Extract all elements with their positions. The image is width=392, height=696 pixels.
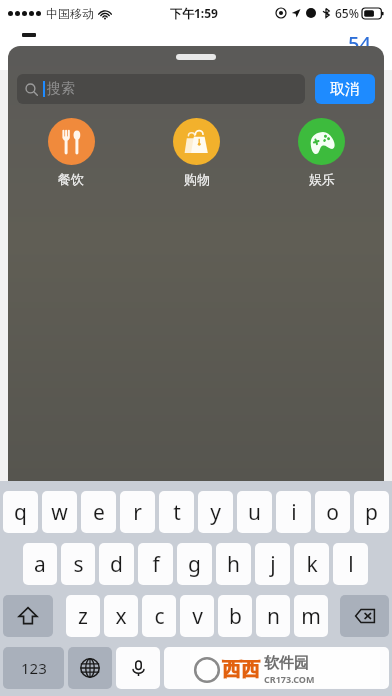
staticText: 中国移动 xyxy=(46,6,94,21)
button[interactable]: h xyxy=(216,543,251,585)
staticText: 西西 xyxy=(222,658,260,682)
staticText: x xyxy=(115,602,127,631)
button[interactable]: s xyxy=(61,543,95,585)
staticText: CR173.COM xyxy=(264,673,315,685)
staticText: j xyxy=(270,550,276,579)
button[interactable]: Dictate xyxy=(116,647,160,689)
button[interactable]: Space xyxy=(164,647,389,689)
button[interactable]: j xyxy=(255,543,290,585)
staticText: 65% xyxy=(335,5,359,21)
staticText: z xyxy=(78,602,88,631)
staticText: 54 xyxy=(348,30,371,57)
button[interactable]: u xyxy=(237,491,272,533)
button[interactable]: c xyxy=(142,595,176,637)
button[interactable]: t xyxy=(159,491,194,533)
button[interactable]: 搜索 xyxy=(17,74,305,104)
button[interactable]: i xyxy=(276,491,311,533)
button[interactable]: d xyxy=(99,543,134,585)
button[interactable]: Backspace xyxy=(340,595,389,637)
staticText: b xyxy=(229,602,242,631)
staticText: g xyxy=(188,550,201,579)
staticText: p xyxy=(365,498,378,527)
staticText: r xyxy=(133,498,142,527)
staticText: d xyxy=(110,550,123,579)
staticText: l xyxy=(348,550,354,579)
staticText: 娱乐 xyxy=(309,171,335,187)
button[interactable]: e xyxy=(81,491,116,533)
staticText: 餐饮 xyxy=(58,171,84,187)
staticText: q xyxy=(14,498,27,527)
button[interactable]: z xyxy=(66,595,100,637)
staticText: k xyxy=(306,550,318,579)
button[interactable]: o xyxy=(315,491,350,533)
staticText: v xyxy=(192,602,203,631)
staticText: h xyxy=(227,550,240,579)
staticText: s xyxy=(73,550,84,579)
staticText: n xyxy=(267,602,280,631)
staticText: m xyxy=(301,602,321,631)
button[interactable]: f xyxy=(138,543,173,585)
button[interactable]: Shift xyxy=(3,595,53,637)
staticText: i xyxy=(291,498,297,527)
button[interactable]: g xyxy=(177,543,212,585)
button[interactable]: v xyxy=(180,595,214,637)
button[interactable]: 娱乐 xyxy=(259,118,384,187)
button[interactable]: y xyxy=(198,491,233,533)
staticText: 123 xyxy=(21,658,47,678)
button[interactable]: k xyxy=(294,543,329,585)
staticText: a xyxy=(34,550,46,579)
button[interactable]: n xyxy=(256,595,290,637)
staticText: e xyxy=(93,498,105,527)
button[interactable]: r xyxy=(120,491,155,533)
staticText: f xyxy=(152,550,160,579)
button[interactable]: m xyxy=(294,595,328,637)
staticText: t xyxy=(173,498,181,527)
staticText: w xyxy=(51,498,68,527)
button[interactable]: a xyxy=(23,543,57,585)
button[interactable]: 取消 xyxy=(315,74,375,104)
staticText: c xyxy=(154,602,165,631)
staticText: 取消 xyxy=(330,80,360,99)
staticText: u xyxy=(248,498,261,527)
button[interactable]: w xyxy=(42,491,77,533)
button[interactable]: q xyxy=(3,491,38,533)
button[interactable]: l xyxy=(333,543,368,585)
button[interactable]: Switch keyboard xyxy=(68,647,112,689)
staticText: 购物 xyxy=(184,171,210,187)
staticText: 下午1:59 xyxy=(170,5,218,21)
button[interactable]: x xyxy=(104,595,138,637)
staticText: y xyxy=(210,498,221,527)
button[interactable]: p xyxy=(354,491,389,533)
button[interactable]: 购物 xyxy=(134,118,259,187)
staticText: 搜索 xyxy=(47,80,75,98)
staticText: 软件园 xyxy=(264,654,309,673)
staticText: o xyxy=(326,498,339,527)
button[interactable]: 餐饮 xyxy=(8,118,134,187)
button[interactable]: b xyxy=(218,595,252,637)
button[interactable]: 123 xyxy=(3,647,64,689)
